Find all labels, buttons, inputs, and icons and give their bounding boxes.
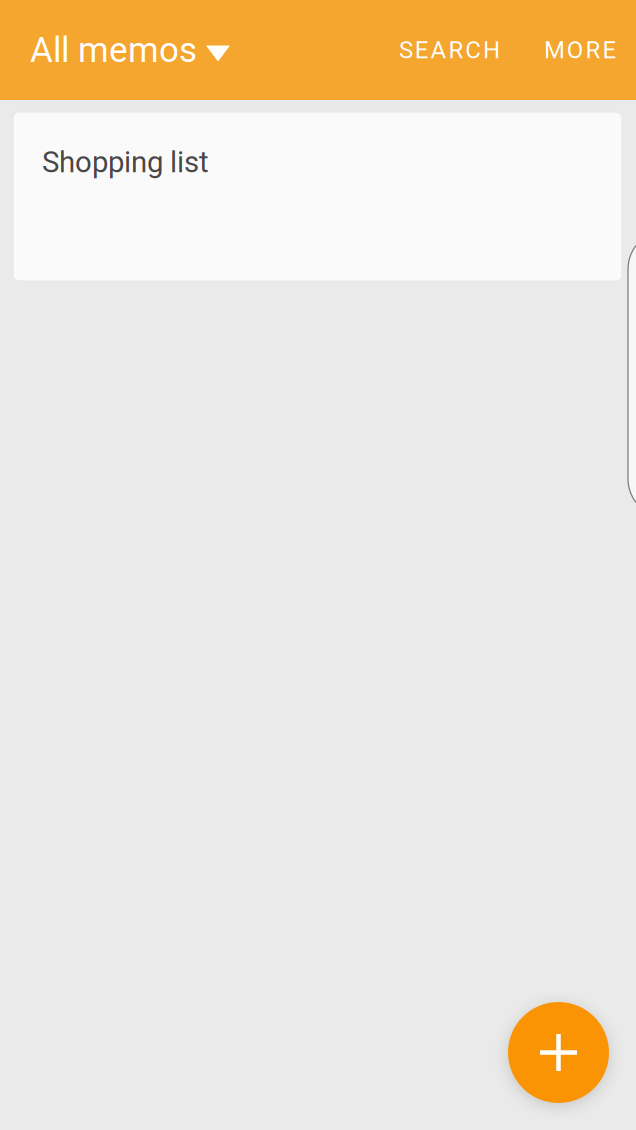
staticText: Shopping list [42,145,209,179]
button[interactable]: MORE [521,0,636,100]
staticText: SEARCH [399,36,500,64]
button[interactable]: SEARCH [376,0,521,100]
button[interactable]: Shopping list [13,112,622,281]
button[interactable]: All memos [0,0,248,100]
staticText: All memos [30,29,197,70]
staticText: MORE [544,36,616,64]
button[interactable]: Create memo [508,1002,609,1103]
